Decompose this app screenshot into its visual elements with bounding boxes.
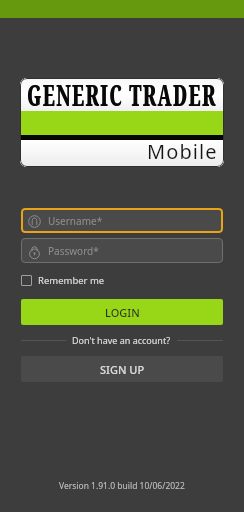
staticText: SIGN UP <box>100 362 145 377</box>
staticText: Don't have an account? <box>72 334 171 346</box>
button[interactable]: Password* <box>21 238 223 263</box>
staticText: Username* <box>48 214 103 228</box>
button[interactable]: Remember me <box>21 274 105 287</box>
staticText: Password* <box>48 244 99 258</box>
staticText: Version 1.91.0 build 10/06/2022 <box>59 480 185 492</box>
staticText: Mobile <box>147 138 218 165</box>
staticText: Remember me <box>38 274 105 287</box>
staticText: LOGIN <box>105 305 140 320</box>
button[interactable]: LOGIN <box>21 299 223 325</box>
button[interactable]: Username* <box>21 208 223 233</box>
button[interactable]: SIGN UP <box>21 356 223 382</box>
